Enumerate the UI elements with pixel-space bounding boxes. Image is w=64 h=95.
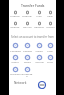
button[interactable]: Deposit: [9, 21, 21, 30]
button[interactable]: Escrow: [33, 54, 45, 65]
button[interactable]: Request: [33, 21, 45, 30]
staticText: Checking: [10, 49, 21, 52]
button[interactable]: Savings: [21, 42, 33, 54]
button[interactable]: Credit: [33, 42, 45, 54]
staticText: Request: [34, 25, 44, 28]
button[interactable]: Wire: [33, 10, 45, 19]
button[interactable]: Invest: [9, 54, 21, 65]
button[interactable]: Network: [14, 81, 27, 85]
staticText: Network: [14, 81, 27, 85]
button[interactable]: External: [21, 10, 33, 19]
staticText: Wire: [36, 14, 42, 17]
staticText: Escrow: [35, 60, 44, 63]
staticText: Bill Pay: [23, 25, 32, 28]
button[interactable]: History: [44, 21, 56, 30]
button[interactable]: Checking: [9, 42, 21, 54]
staticText: Loan: [47, 49, 53, 52]
staticText: Savings: [23, 49, 32, 52]
staticText: Internal: [10, 14, 20, 17]
button[interactable]: Contact: [38, 81, 46, 89]
staticText: Credit: [35, 49, 43, 52]
staticText: Retire: [24, 60, 31, 63]
staticText: Zelle: [47, 14, 53, 17]
button[interactable]: Bill Pay: [21, 21, 33, 30]
staticText: Transfer Funds: [21, 3, 45, 7]
staticText: Trust: [47, 60, 53, 63]
staticText: External: [22, 14, 32, 17]
staticText: Deposit: [10, 25, 20, 28]
staticText: History: [46, 25, 55, 28]
button[interactable]: Brokerage: [21, 66, 33, 76]
staticText: Select an account to transfer from: [11, 35, 54, 39]
button[interactable]: Business: [9, 66, 21, 76]
button[interactable]: Zelle: [44, 10, 56, 19]
button[interactable]: Loan: [44, 42, 56, 54]
button[interactable]: Internal: [9, 10, 21, 19]
button[interactable]: Retire: [21, 54, 33, 65]
staticText: Business: [10, 72, 21, 75]
staticText: Invest: [11, 60, 19, 63]
button[interactable]: Trust: [44, 54, 56, 65]
staticText: Brokerage: [21, 72, 33, 78]
